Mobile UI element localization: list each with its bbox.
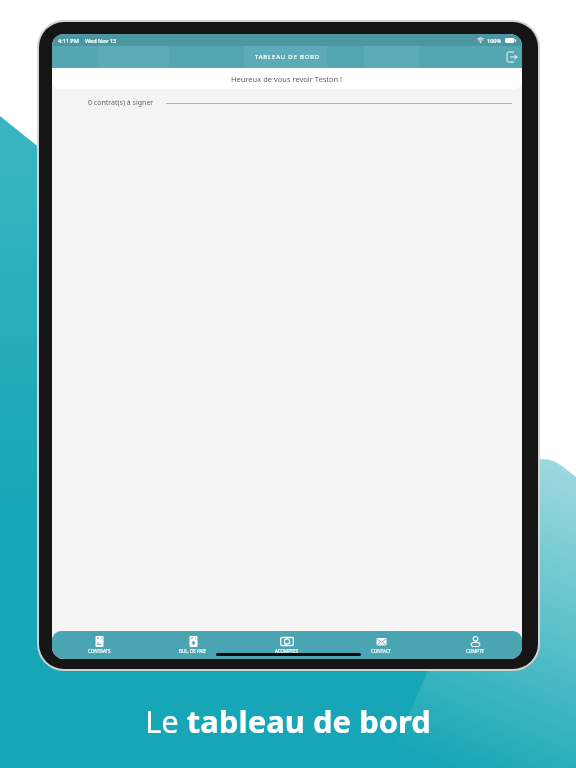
button[interactable] [504, 49, 520, 65]
staticText: COMPTE [466, 648, 485, 654]
staticText: CONTACT [371, 648, 392, 654]
staticText: TABLEAU DE BORD [255, 53, 320, 61]
staticText: Heureux de vous revoir Teston ! [231, 74, 343, 84]
staticText: BUL. DE PAIE [179, 648, 207, 654]
staticText: 4:11 PM [58, 37, 79, 44]
staticText: CONTRATS [88, 648, 111, 654]
staticText: ACOMPTES [275, 648, 299, 654]
staticText: Wed Nov 13 [85, 37, 117, 44]
button[interactable]: CONTACT [334, 636, 428, 659]
button[interactable]: BUL. DE PAIE [146, 636, 240, 659]
staticText: 100% [487, 37, 502, 44]
button[interactable]: ACOMPTES [240, 636, 334, 659]
staticText: 0 contrat(s) à signer [88, 98, 154, 108]
staticText: Le tableau de bord [145, 700, 431, 742]
button[interactable]: CONTRATS [52, 636, 146, 659]
button[interactable]: COMPTE [428, 636, 522, 659]
